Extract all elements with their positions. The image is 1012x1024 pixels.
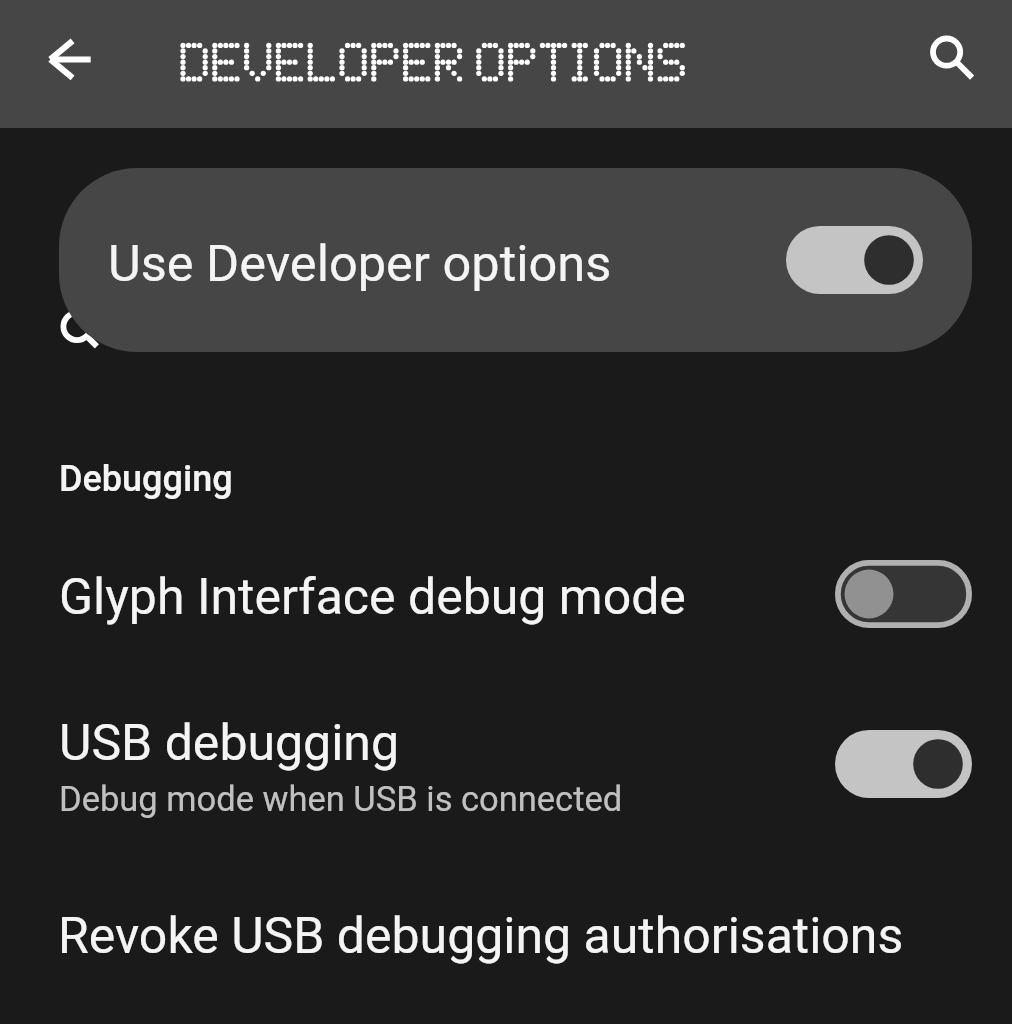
staticText: USB debugging — [59, 712, 400, 772]
staticText: Debugging — [59, 457, 233, 500]
staticText: Debug mode when USB is connected — [59, 778, 623, 819]
staticText: Revoke USB debugging authorisations — [58, 905, 904, 965]
button[interactable]: USB debugging — [0, 690, 1012, 830]
button[interactable]: Glyph Interface debug mode — [0, 536, 1012, 656]
button[interactable]: Glyph Interface debug mode — [835, 560, 972, 628]
button[interactable]: Search — [898, 11, 994, 107]
staticText: Glyph Interface debug mode — [59, 566, 686, 626]
button[interactable]: Use Developer options — [786, 226, 923, 294]
button[interactable]: Back — [21, 11, 117, 107]
button[interactable]: Use Developer options — [59, 168, 972, 352]
button[interactable]: USB debugging — [835, 730, 972, 798]
staticText: Use Developer options — [108, 233, 612, 294]
button[interactable]: Revoke USB debugging authorisations — [0, 875, 1012, 995]
